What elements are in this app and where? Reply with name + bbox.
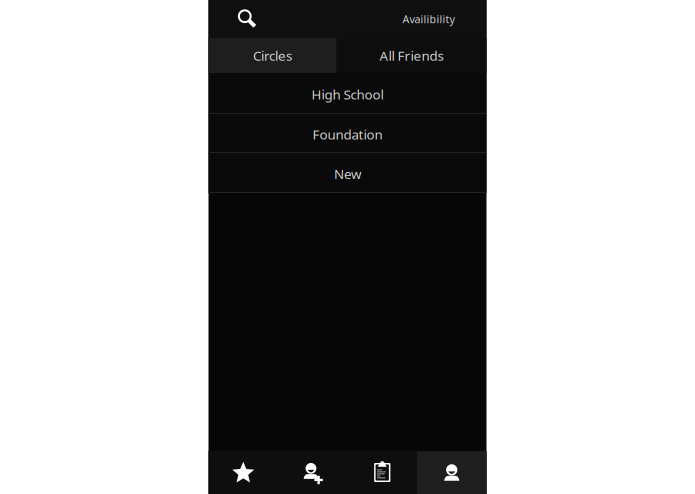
- staticText: All Friends: [379, 47, 443, 64]
- staticText: New: [334, 165, 361, 183]
- staticText: Foundation: [312, 125, 382, 143]
- button[interactable]: Favorites: [208, 451, 278, 494]
- staticText: High School: [311, 85, 383, 103]
- button[interactable]: Profile: [417, 451, 486, 494]
- button[interactable]: Foundation: [208, 114, 486, 153]
- button[interactable]: Add Friend: [278, 451, 347, 494]
- button[interactable]: Requests: [347, 451, 417, 494]
- button[interactable]: Availibility: [402, 0, 486, 38]
- button[interactable]: High School: [208, 73, 486, 114]
- button[interactable]: New: [208, 153, 486, 193]
- button[interactable]: All Friends: [336, 38, 486, 73]
- staticText: Availibility: [402, 12, 454, 26]
- button[interactable]: Search: [208, 0, 266, 38]
- button[interactable]: Circles: [208, 38, 336, 73]
- staticText: Circles: [253, 47, 292, 64]
